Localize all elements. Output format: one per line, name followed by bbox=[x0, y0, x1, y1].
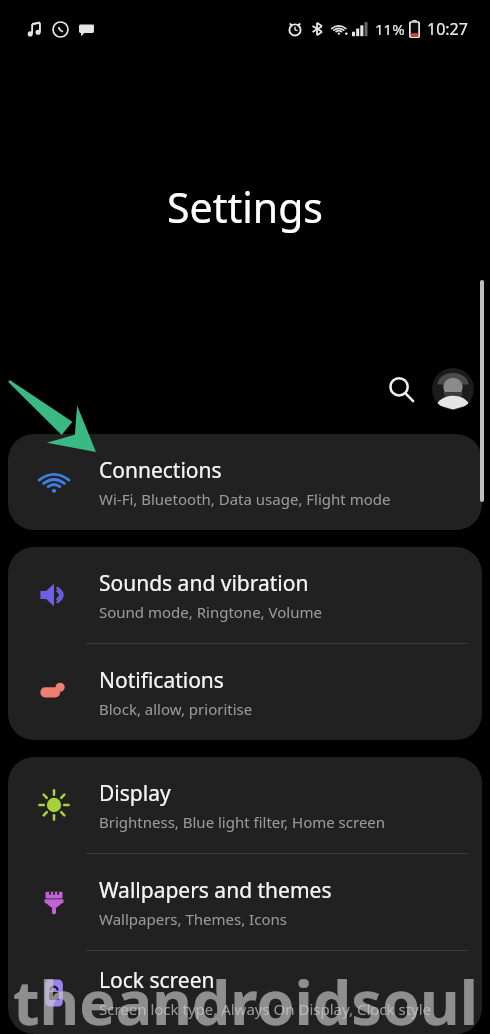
staticText: Lock screen bbox=[99, 966, 215, 995]
button[interactable]: Sounds and vibration bbox=[8, 547, 482, 643]
button[interactable]: Display bbox=[8, 757, 482, 853]
button[interactable]: Search settings bbox=[378, 366, 424, 412]
staticText: Screen lock type, Always On Display, Clo… bbox=[99, 999, 432, 1019]
staticText: Sound mode, Ringtone, Volume bbox=[99, 602, 322, 622]
button[interactable]: Wallpapers and themes bbox=[8, 854, 482, 950]
button[interactable]: Connections bbox=[8, 434, 482, 530]
staticText: Brightness, Blue light filter, Home scre… bbox=[99, 812, 386, 832]
staticText: 10:27 bbox=[427, 18, 468, 40]
staticText: Display bbox=[99, 779, 171, 808]
staticText: Connections bbox=[99, 456, 222, 485]
staticText: Wallpapers, Themes, Icons bbox=[99, 909, 287, 929]
staticText: Settings bbox=[167, 179, 324, 235]
staticText: Wallpapers and themes bbox=[99, 876, 332, 905]
button[interactable]: Samsung account profile bbox=[432, 368, 474, 410]
staticText: Sounds and vibration bbox=[99, 569, 309, 598]
staticText: Block, allow, prioritise bbox=[99, 699, 253, 719]
staticText: Notifications bbox=[99, 666, 224, 695]
button[interactable]: Lock screen bbox=[8, 951, 482, 1034]
staticText: 11% bbox=[375, 19, 405, 39]
staticText: Wi-Fi, Bluetooth, Data usage, Flight mod… bbox=[99, 489, 391, 509]
staticText: theandroidsoul bbox=[13, 960, 478, 1034]
button[interactable]: Notifications bbox=[8, 644, 482, 740]
